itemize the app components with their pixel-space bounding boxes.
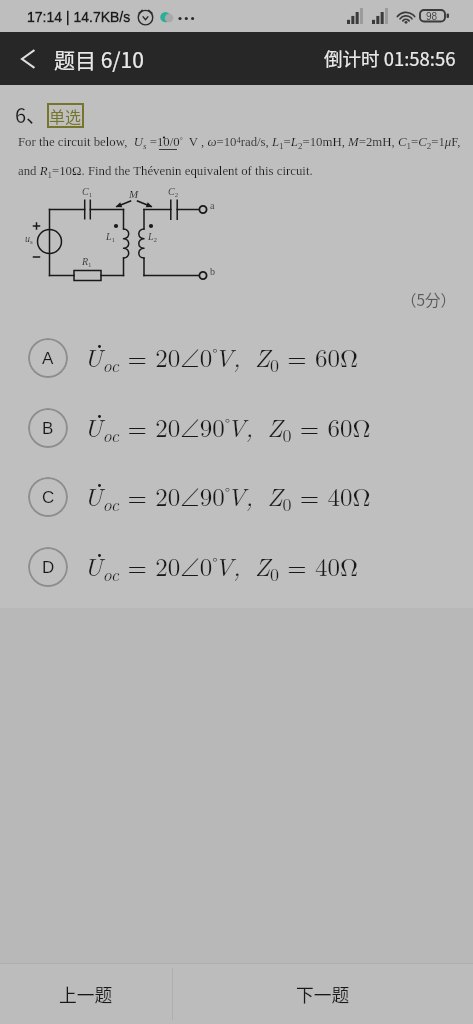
staticText: Uoc = 20∠0°V, Z0 = 60Ω (84, 339, 359, 373)
staticText: 倒计时 01:58:56 (324, 45, 456, 72)
button[interactable]: D (0, 532, 473, 602)
button[interactable]: 上一题 (0, 964, 172, 1024)
staticText: 下一题 (296, 981, 350, 1007)
staticText: 上一题 (59, 981, 113, 1007)
staticText: a (210, 200, 215, 211)
other: Back (16, 46, 36, 72)
staticText: b (210, 266, 215, 277)
staticText: Uoc = 20∠0°V, Z0 = 40Ω (84, 548, 359, 582)
staticText: 6、 (15, 100, 47, 129)
staticText: （5分） (401, 288, 457, 310)
staticText: 题目 6/10 (54, 44, 144, 74)
staticText: D (42, 558, 55, 577)
staticText: B (42, 419, 54, 438)
button[interactable]: 下一题 (173, 964, 473, 1024)
staticText: us (25, 233, 33, 245)
staticText: 98 (426, 11, 438, 22)
staticText: 17:14 | 14.7KB/s (27, 9, 131, 25)
button[interactable]: C (0, 462, 473, 532)
staticText: L2 (148, 231, 158, 243)
staticText: For the circuit below, Us =10/0° V , ω=1… (18, 135, 461, 150)
staticText: C1 (82, 186, 93, 198)
staticText: 单选 (49, 104, 82, 127)
staticText: M (129, 188, 139, 200)
staticText: L1 (106, 231, 116, 243)
staticText: Uoc = 20∠90°V, Z0 = 60Ω (84, 409, 371, 443)
staticText: R1 (82, 256, 92, 268)
staticText: C (42, 488, 55, 507)
button[interactable]: A (0, 323, 473, 393)
staticText: A (42, 349, 54, 368)
staticText: C2 (168, 186, 179, 198)
staticText: and R1=10Ω. Find the Thévenin equivalent… (18, 164, 313, 179)
button[interactable]: Back (0, 36, 154, 82)
button[interactable]: B (0, 393, 473, 463)
staticText: Uoc = 20∠90°V, Z0 = 40Ω (84, 478, 371, 512)
